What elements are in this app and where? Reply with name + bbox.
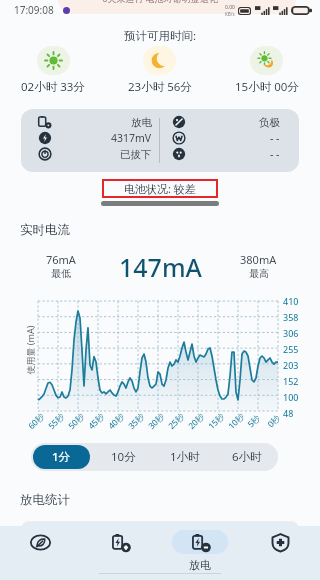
staticText: 使用量 (mA) — [23, 325, 35, 374]
staticText: 15小时 00分 — [235, 79, 299, 95]
staticText: 152 — [283, 375, 299, 387]
staticText: 0.00 — [225, 4, 235, 11]
staticText: 358 — [283, 311, 299, 323]
staticText: 0秒 — [265, 412, 283, 430]
staticText: 30秒 — [145, 410, 167, 432]
staticText: 48 — [283, 407, 294, 419]
staticText: 15秒 — [205, 410, 227, 432]
staticText: 20秒 — [185, 410, 207, 432]
staticText: 17:09:08 — [14, 3, 54, 17]
staticText: 255 — [283, 343, 299, 355]
staticText: 最高 — [249, 267, 269, 280]
staticText: 1小时 — [170, 449, 200, 465]
staticText: - - — [270, 131, 280, 145]
staticText: 已拔下 — [120, 148, 152, 161]
staticText: 203 — [283, 359, 299, 371]
staticText: 负极 — [259, 116, 280, 129]
staticText: 电池状况: 较差 — [124, 181, 196, 196]
staticText: 23小时 56分 — [128, 79, 192, 95]
staticText: 6天未运行 电池寿命明显退化 — [0, 0, 320, 4]
staticText: 147mA — [119, 250, 202, 282]
button[interactable]: 1分 — [33, 445, 90, 469]
staticText: 4317mV — [111, 131, 152, 145]
button[interactable]: Charge — [80, 521, 160, 580]
staticText: 306 — [283, 327, 299, 339]
staticText: KB/s — [225, 11, 235, 17]
staticText: 40秒 — [105, 410, 127, 432]
staticText: 10分 — [111, 449, 136, 465]
staticText: 55秒 — [45, 410, 67, 432]
staticText: 放电 — [189, 558, 211, 572]
staticText: 放电统计 — [20, 492, 70, 508]
staticText: 50秒 — [65, 410, 87, 432]
staticText: 35秒 — [125, 410, 147, 432]
staticText: 25秒 — [165, 410, 187, 432]
staticText: 76mA — [46, 252, 76, 267]
button[interactable]: Protection — [240, 521, 320, 580]
staticText: 60秒 — [25, 410, 47, 432]
button[interactable]: 10分 — [94, 445, 152, 469]
staticText: 410 — [283, 295, 299, 307]
staticText: 100 — [283, 391, 299, 403]
staticText: 最低 — [51, 267, 71, 280]
staticText: 45秒 — [85, 410, 107, 432]
staticText: 放电 — [131, 116, 152, 129]
button[interactable]: 6小时 — [218, 445, 276, 469]
staticText: 1分 — [52, 449, 71, 465]
button[interactable]: Eco mode — [0, 521, 80, 580]
staticText: 6小时 — [232, 449, 262, 465]
staticText: 预计可用时间: — [0, 28, 320, 44]
staticText: 5秒 — [245, 412, 263, 430]
staticText: - - — [270, 147, 280, 161]
button[interactable]: 1小时 — [156, 445, 214, 469]
staticText: 实时电流 — [20, 222, 70, 238]
staticText: 02小时 33分 — [21, 79, 85, 95]
button[interactable]: Discharge — [160, 521, 240, 580]
staticText: 380mA — [240, 252, 277, 267]
staticText: 10秒 — [225, 410, 247, 432]
